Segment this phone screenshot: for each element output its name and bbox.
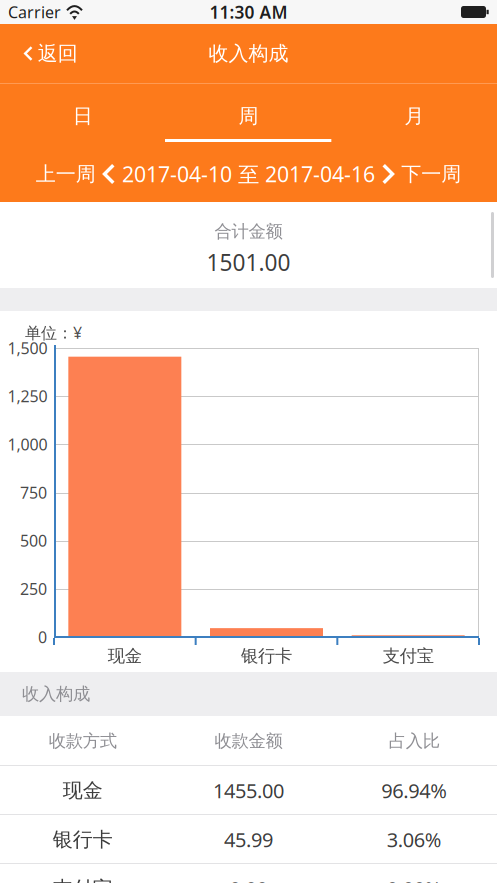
staticText: 2017-04-10 至 2017-04-16 xyxy=(122,160,375,188)
button[interactable]: 日 xyxy=(0,83,166,146)
button[interactable]: 银行卡 xyxy=(0,815,497,864)
staticText: 0 xyxy=(38,626,47,648)
staticText: 支付宝 xyxy=(53,876,113,883)
staticText: 250 xyxy=(20,578,47,599)
staticText: 750 xyxy=(20,482,47,503)
staticText: 收入构成 xyxy=(22,683,90,705)
staticText: 周 xyxy=(238,104,258,128)
staticText: 0.00% xyxy=(387,875,442,883)
staticText: 0.00 xyxy=(229,875,267,883)
staticText: 1,250 xyxy=(7,385,47,407)
staticText: 11:30 AM xyxy=(209,0,287,23)
staticText: 下一周 xyxy=(401,162,461,186)
staticText: 收入构成 xyxy=(208,41,288,66)
staticText: 96.94% xyxy=(381,777,447,804)
button[interactable]: 上一周 xyxy=(36,152,115,196)
staticText: 45.99 xyxy=(224,826,273,853)
staticText: 500 xyxy=(20,530,47,551)
staticText: Carrier xyxy=(8,1,61,23)
staticText: 上一周 xyxy=(36,162,96,186)
staticText: 3.06% xyxy=(387,826,442,853)
staticText: 合计金额 xyxy=(214,221,282,242)
button[interactable]: 返回 xyxy=(0,24,92,83)
button[interactable]: 周 xyxy=(166,83,331,146)
staticText: 支付宝 xyxy=(383,645,434,667)
staticText: 单位：¥ xyxy=(25,322,82,343)
staticText: 收款金额 xyxy=(214,730,282,752)
staticText: 占入比 xyxy=(389,730,440,752)
staticText: 现金 xyxy=(108,645,142,667)
staticText: 返回 xyxy=(38,41,78,66)
button[interactable]: 下一周 xyxy=(382,152,461,196)
staticText: 1,000 xyxy=(7,434,47,455)
staticText: 1,500 xyxy=(7,337,47,359)
button[interactable]: 支付宝 xyxy=(0,864,497,883)
staticText: 日 xyxy=(73,104,93,128)
staticText: 银行卡 xyxy=(53,827,113,852)
staticText: 1455.00 xyxy=(213,777,284,804)
staticText: 1501.00 xyxy=(206,247,290,277)
button[interactable]: 现金 xyxy=(0,766,497,815)
staticText: 银行卡 xyxy=(241,645,292,667)
staticText: 收款方式 xyxy=(49,730,117,752)
button[interactable]: 月 xyxy=(331,83,497,146)
staticText: 现金 xyxy=(63,778,103,803)
staticText: 月 xyxy=(404,104,424,128)
